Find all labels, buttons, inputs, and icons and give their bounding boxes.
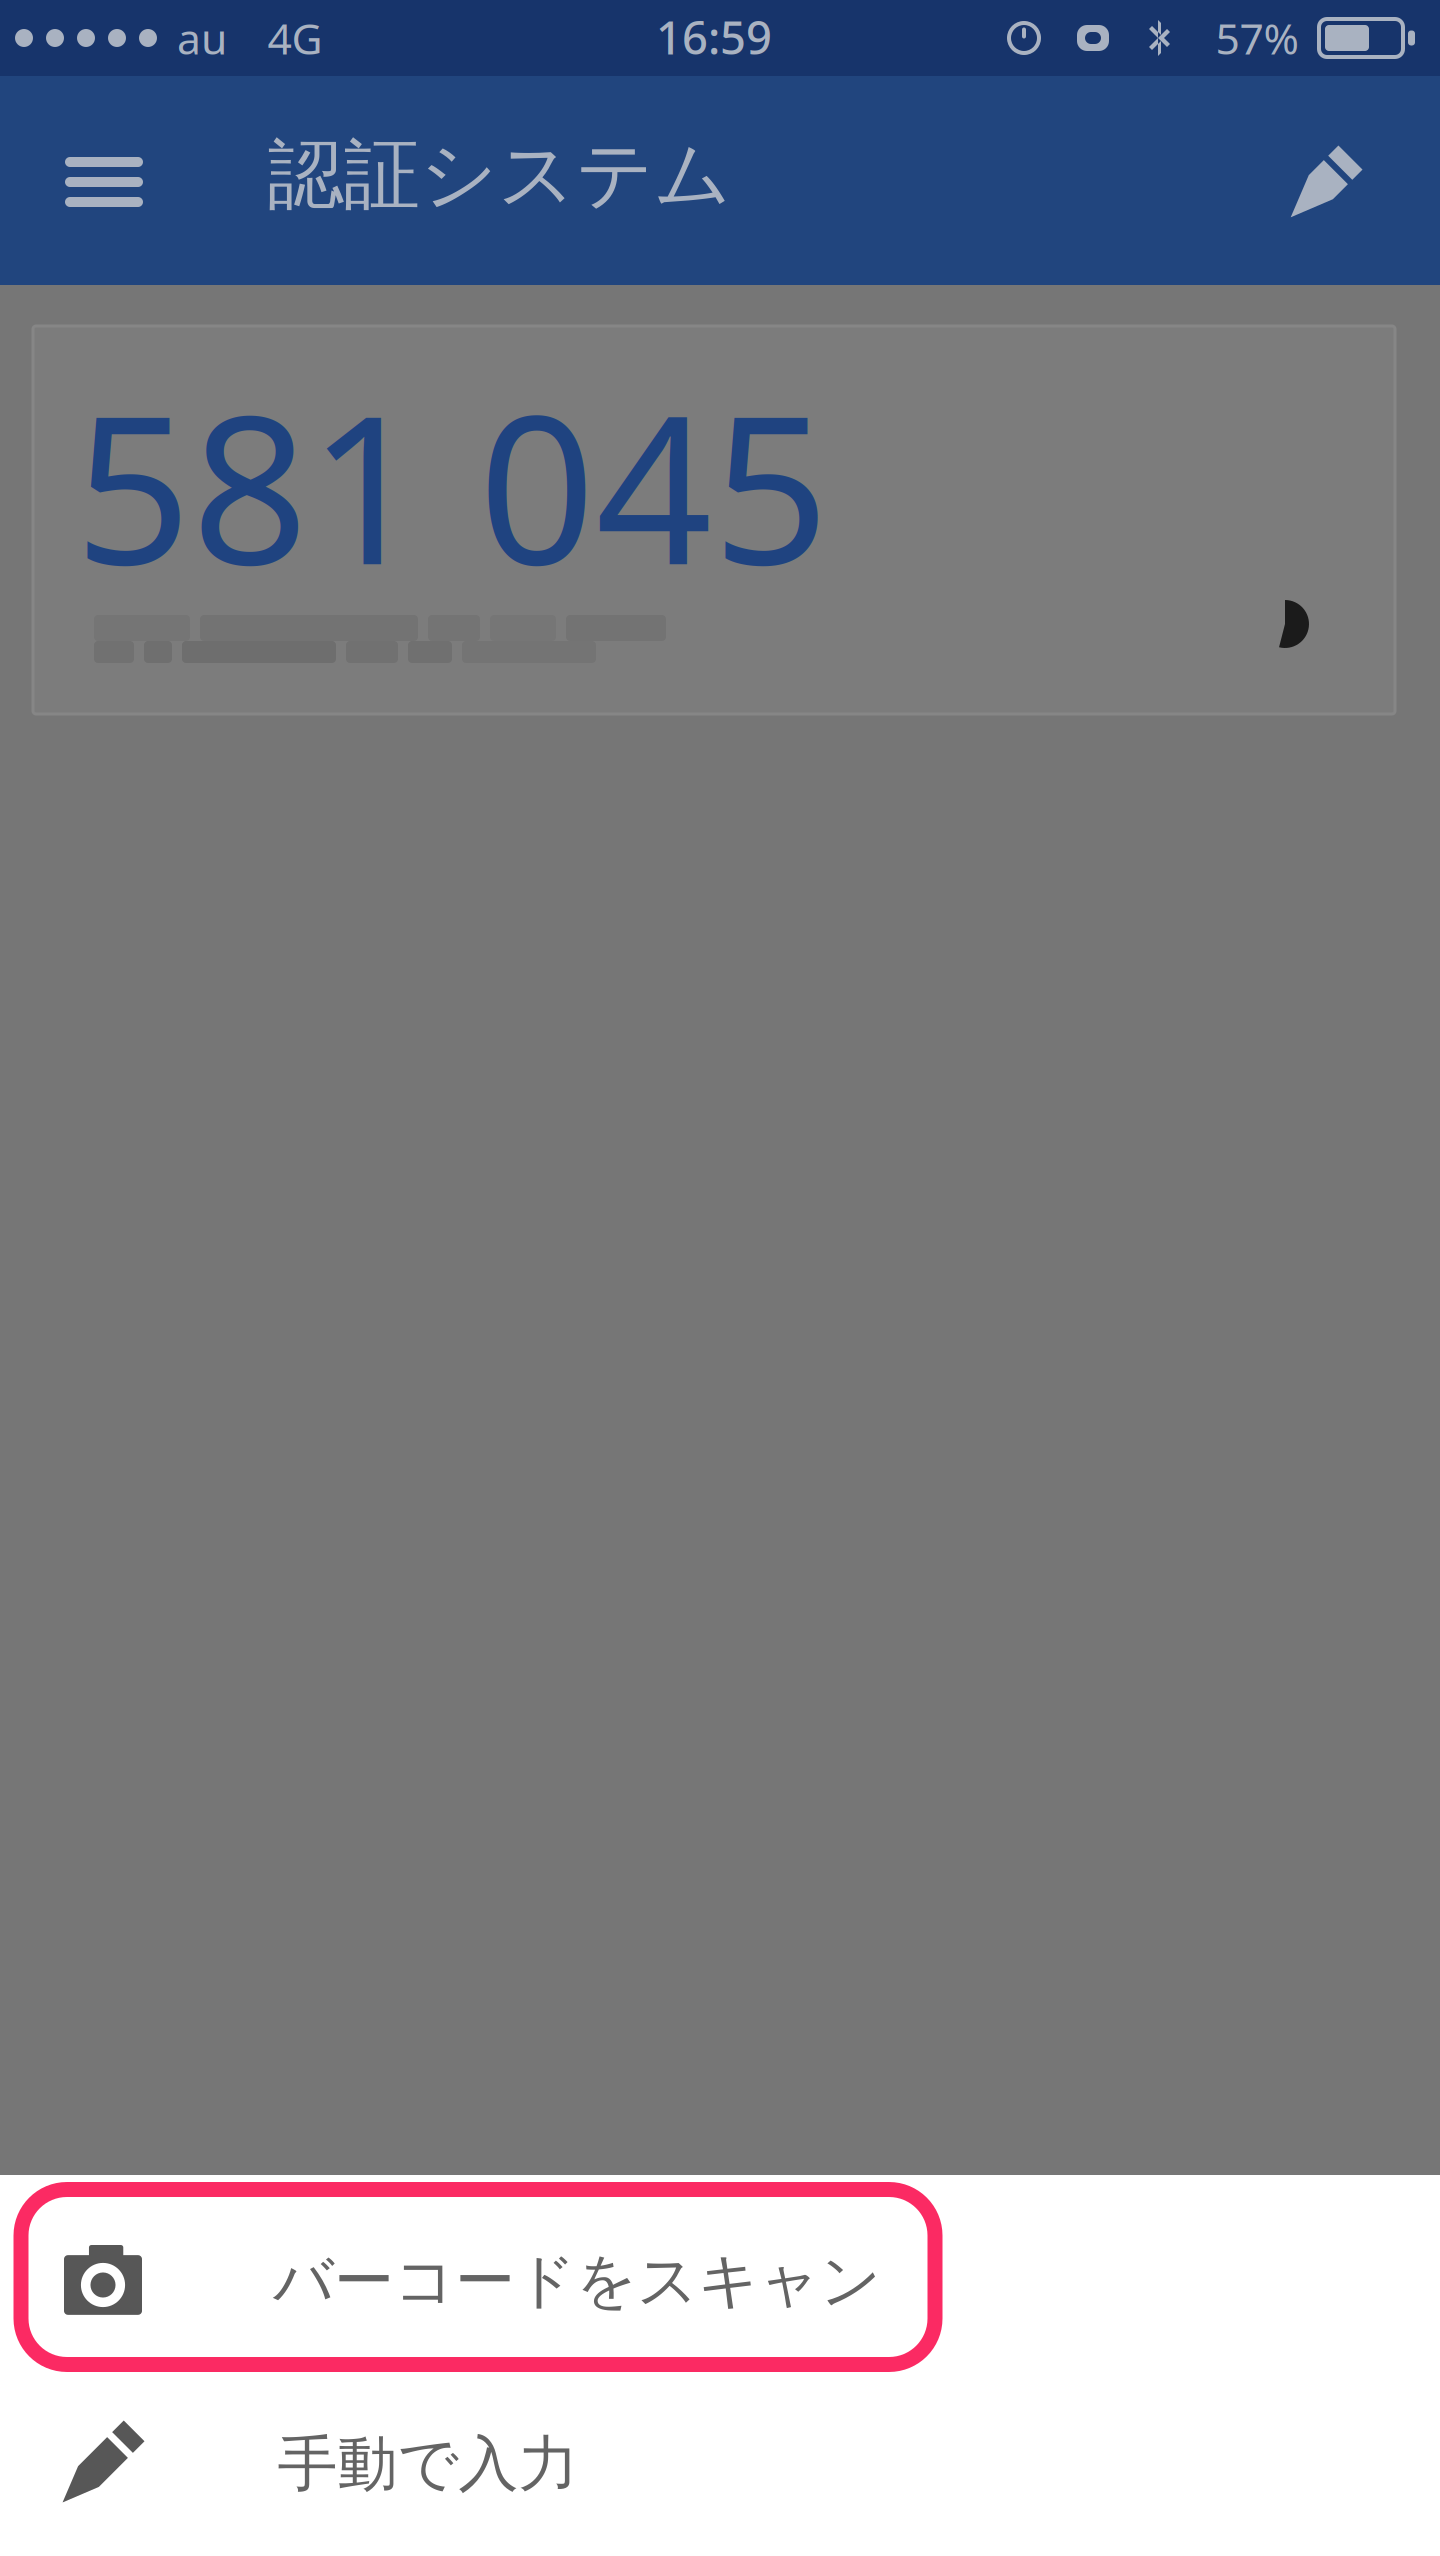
button[interactable]: Edit bbox=[1231, 77, 1421, 286]
staticText: 手動で入力 bbox=[277, 2427, 578, 2501]
staticText: 57% bbox=[1215, 10, 1298, 66]
staticText: 認証システム bbox=[268, 128, 732, 222]
staticText: 4G bbox=[267, 10, 322, 66]
staticText: au bbox=[177, 10, 227, 66]
staticText: 16:59 bbox=[656, 7, 772, 67]
button[interactable]: Menu bbox=[0, 77, 208, 286]
staticText: 581 045 bbox=[74, 349, 829, 620]
staticText: バーコードをスキャン bbox=[273, 2244, 881, 2318]
button[interactable]: 手動で入力 bbox=[0, 2366, 1440, 2546]
button[interactable]: バーコードをスキャン bbox=[0, 2183, 1440, 2363]
